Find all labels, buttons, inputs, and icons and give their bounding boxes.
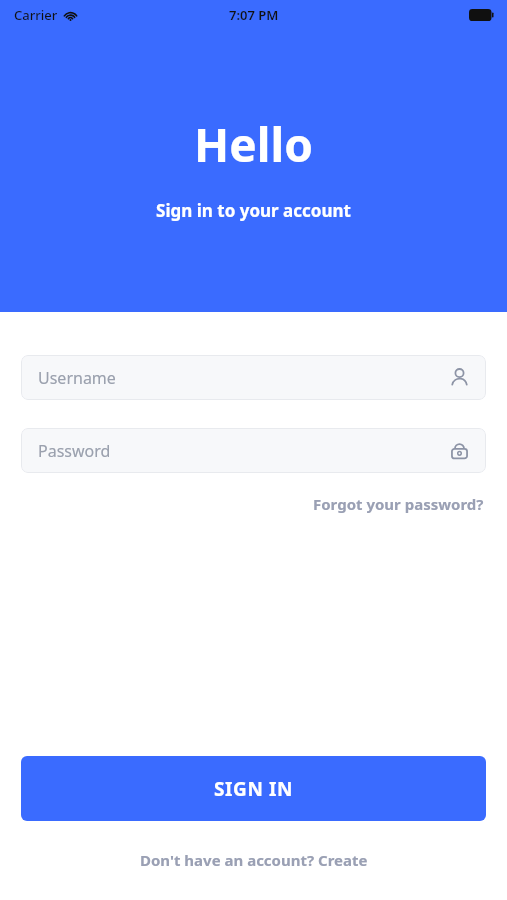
staticText: Forgot your password? xyxy=(313,494,484,514)
staticText: 7:07 PM xyxy=(229,6,279,24)
staticText: Password xyxy=(38,440,449,462)
staticText: Carrier xyxy=(14,6,58,24)
other: Username xyxy=(449,367,470,388)
button[interactable]: Password xyxy=(21,428,486,473)
staticText: Hello xyxy=(194,113,313,176)
button[interactable]: Don't have an account? Create xyxy=(136,847,372,873)
button[interactable]: SIGN IN xyxy=(21,756,486,821)
other: Password xyxy=(449,440,470,461)
button[interactable]: Forgot your password? xyxy=(311,491,486,517)
staticText: Username xyxy=(38,367,449,389)
staticText: Don't have an account? Create xyxy=(140,850,368,870)
staticText: SIGN IN xyxy=(214,776,294,802)
button[interactable]: Username xyxy=(21,355,486,400)
staticText: Sign in to your account xyxy=(156,199,351,222)
